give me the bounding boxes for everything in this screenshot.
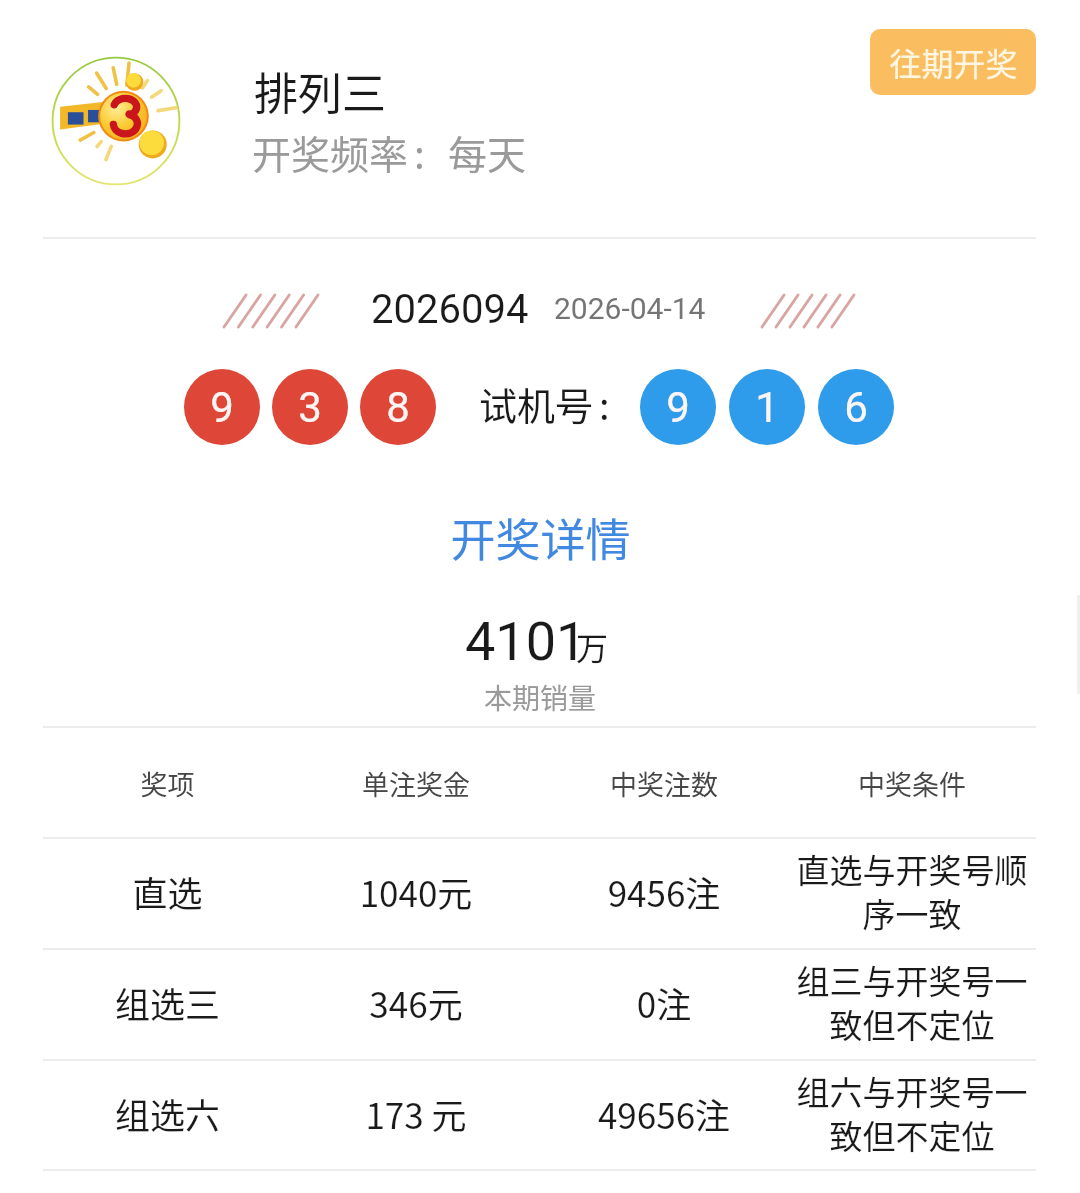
staticText: 每天 (448, 124, 648, 180)
button[interactable]: 开奖详情 (380, 505, 700, 567)
staticText: 万 (576, 623, 656, 669)
staticText: 2026094 (371, 286, 571, 333)
button[interactable]: 组选六 (43, 1058, 1036, 1168)
staticText: 组选三 (43, 977, 292, 1028)
button[interactable]: 往期开奖 (870, 29, 1036, 95)
staticText: 346元 (292, 977, 540, 1028)
other: 排列三 logo (51, 56, 181, 186)
staticText: 9456注 (540, 866, 788, 917)
staticText: 173 元 (292, 1088, 540, 1139)
staticText: 往期开奖 (889, 39, 1018, 85)
staticText: 组三与开奖号一致但不定位 (788, 956, 1036, 1048)
staticText: 单注奖金 (292, 764, 540, 803)
staticText: 4101 (465, 610, 665, 673)
staticText: 开奖频率 (252, 124, 652, 180)
staticText: 奖项 (43, 764, 292, 803)
staticText: 8 (386, 383, 410, 432)
staticText: 2026-04-14 (554, 291, 754, 326)
staticText: 排列三 (254, 59, 654, 123)
staticText: 6 (844, 383, 868, 432)
staticText: 组选六 (43, 1088, 292, 1139)
staticText: 0注 (540, 977, 788, 1028)
staticText: : (414, 124, 474, 180)
staticText: 9 (210, 383, 234, 432)
staticText: 开奖详情 (450, 505, 631, 567)
button[interactable]: 排列三 logo (43, 0, 843, 237)
button[interactable]: 组选三 (43, 947, 1036, 1057)
staticText: 3 (298, 383, 322, 432)
staticText: 直选与开奖号顺序一致 (788, 845, 1036, 937)
staticText: 1040元 (292, 866, 540, 917)
staticText: 中奖注数 (540, 764, 788, 803)
staticText: 1 (755, 383, 779, 432)
staticText: 9 (666, 383, 690, 432)
staticText: 本期销量 (0, 677, 1080, 718)
staticText: 中奖条件 (788, 764, 1036, 803)
staticText: 组六与开奖号一致但不定位 (788, 1067, 1036, 1159)
staticText: : (599, 376, 639, 431)
staticText: 直选 (43, 866, 292, 917)
staticText: 49656注 (540, 1088, 788, 1139)
button[interactable]: 直选 (43, 836, 1036, 946)
staticText: 试机号 (479, 376, 639, 431)
